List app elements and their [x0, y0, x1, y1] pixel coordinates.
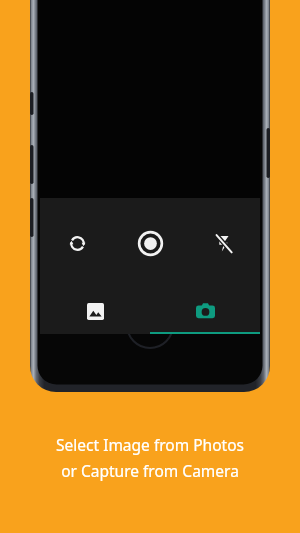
- staticText: Select Image from Photos: [56, 434, 244, 455]
- button[interactable]: Photos tab: [40, 288, 150, 334]
- button[interactable]: Flash off: [187, 198, 260, 288]
- button[interactable]: Switch camera: [40, 198, 114, 288]
- button[interactable]: Capture photo: [114, 198, 187, 288]
- staticText: or Capture from Camera: [61, 460, 239, 481]
- button[interactable]: Camera tab: [150, 288, 260, 334]
